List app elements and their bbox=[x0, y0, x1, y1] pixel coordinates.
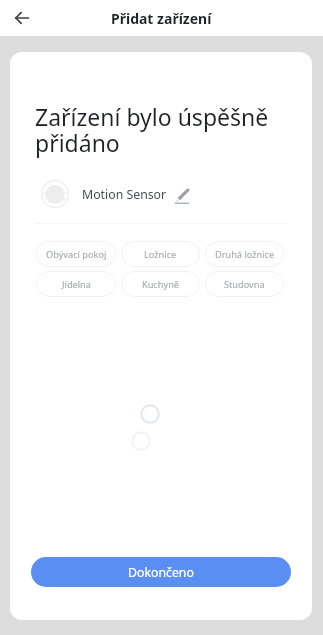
button[interactable]: Kuchyně bbox=[121, 271, 200, 297]
staticText: Ložnice bbox=[144, 248, 177, 261]
staticText: Přidat zařízení bbox=[111, 9, 212, 28]
staticText: Zařízení bylo úspěšně přidáno bbox=[35, 101, 280, 159]
button[interactable]: Jídelna bbox=[36, 271, 116, 297]
button[interactable]: Studovna bbox=[205, 271, 284, 297]
button[interactable]: Dokončeno bbox=[31, 557, 291, 587]
button[interactable]: Obývací pokoj bbox=[36, 241, 116, 267]
button[interactable]: Ložnice bbox=[121, 241, 200, 267]
button[interactable]: Edit name bbox=[172, 184, 192, 204]
staticText: Kuchyně bbox=[142, 278, 179, 291]
button[interactable]: Druhá ložnice bbox=[205, 241, 284, 267]
staticText: Jídelna bbox=[62, 278, 91, 291]
staticText: Motion Sensor bbox=[82, 186, 167, 203]
staticText: Studovna bbox=[224, 278, 265, 291]
staticText: Druhá ložnice bbox=[215, 248, 275, 261]
button[interactable]: Back bbox=[8, 4, 36, 32]
staticText: Obývací pokoj bbox=[46, 248, 107, 261]
staticText: Dokončeno bbox=[128, 564, 194, 581]
